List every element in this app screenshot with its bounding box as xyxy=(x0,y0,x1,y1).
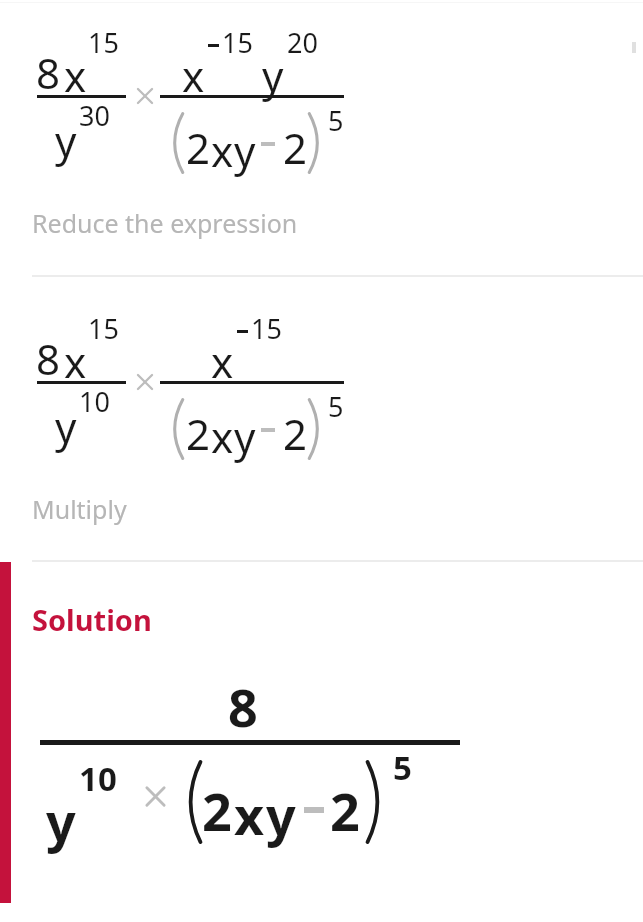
staticText: y xyxy=(55,398,77,455)
staticText: 15 xyxy=(88,24,119,61)
button[interactable]: 8 xyxy=(0,0,643,190)
button[interactable]: 8 xyxy=(0,286,643,476)
staticText: 30 xyxy=(79,97,110,134)
staticText: x xyxy=(211,333,234,390)
staticText: 2 xyxy=(330,775,360,846)
staticText: 5 xyxy=(393,745,412,790)
staticText: 5 xyxy=(328,388,344,425)
staticText: x xyxy=(64,47,87,104)
staticText: 15 xyxy=(251,310,282,347)
staticText: x xyxy=(64,333,87,390)
staticText: 8 xyxy=(36,330,61,387)
staticText: 8 xyxy=(36,44,61,101)
staticText: 20 xyxy=(287,24,318,61)
staticText: 8 xyxy=(228,671,258,742)
staticText: 2 xyxy=(283,119,308,176)
staticText: Reduce the expression xyxy=(32,206,298,240)
staticText: 15 xyxy=(222,24,253,61)
button[interactable]: Reduce the expression xyxy=(0,196,643,254)
staticText: 10 xyxy=(79,383,110,420)
staticText: y xyxy=(234,408,256,465)
staticText: 2 xyxy=(186,405,211,462)
staticText: 15 xyxy=(88,310,119,347)
staticText: Multiply xyxy=(32,492,127,526)
staticText: x xyxy=(182,47,205,104)
staticText: y xyxy=(55,112,77,169)
staticText: 5 xyxy=(328,102,344,139)
staticText: 2 xyxy=(283,405,308,462)
staticText: y xyxy=(46,785,76,856)
button[interactable]: Multiply xyxy=(0,482,643,540)
staticText: 2 xyxy=(202,775,232,846)
staticText: x xyxy=(211,122,234,179)
staticText: y xyxy=(262,47,284,104)
staticText: y xyxy=(266,779,296,850)
staticText: x xyxy=(211,408,234,465)
staticText: Solution xyxy=(32,600,152,639)
button[interactable]: More xyxy=(632,38,642,56)
staticText: y xyxy=(234,122,256,179)
button[interactable]: 8 xyxy=(0,655,643,895)
staticText: x xyxy=(234,779,265,850)
staticText: 10 xyxy=(79,756,117,801)
staticText: 2 xyxy=(186,119,211,176)
